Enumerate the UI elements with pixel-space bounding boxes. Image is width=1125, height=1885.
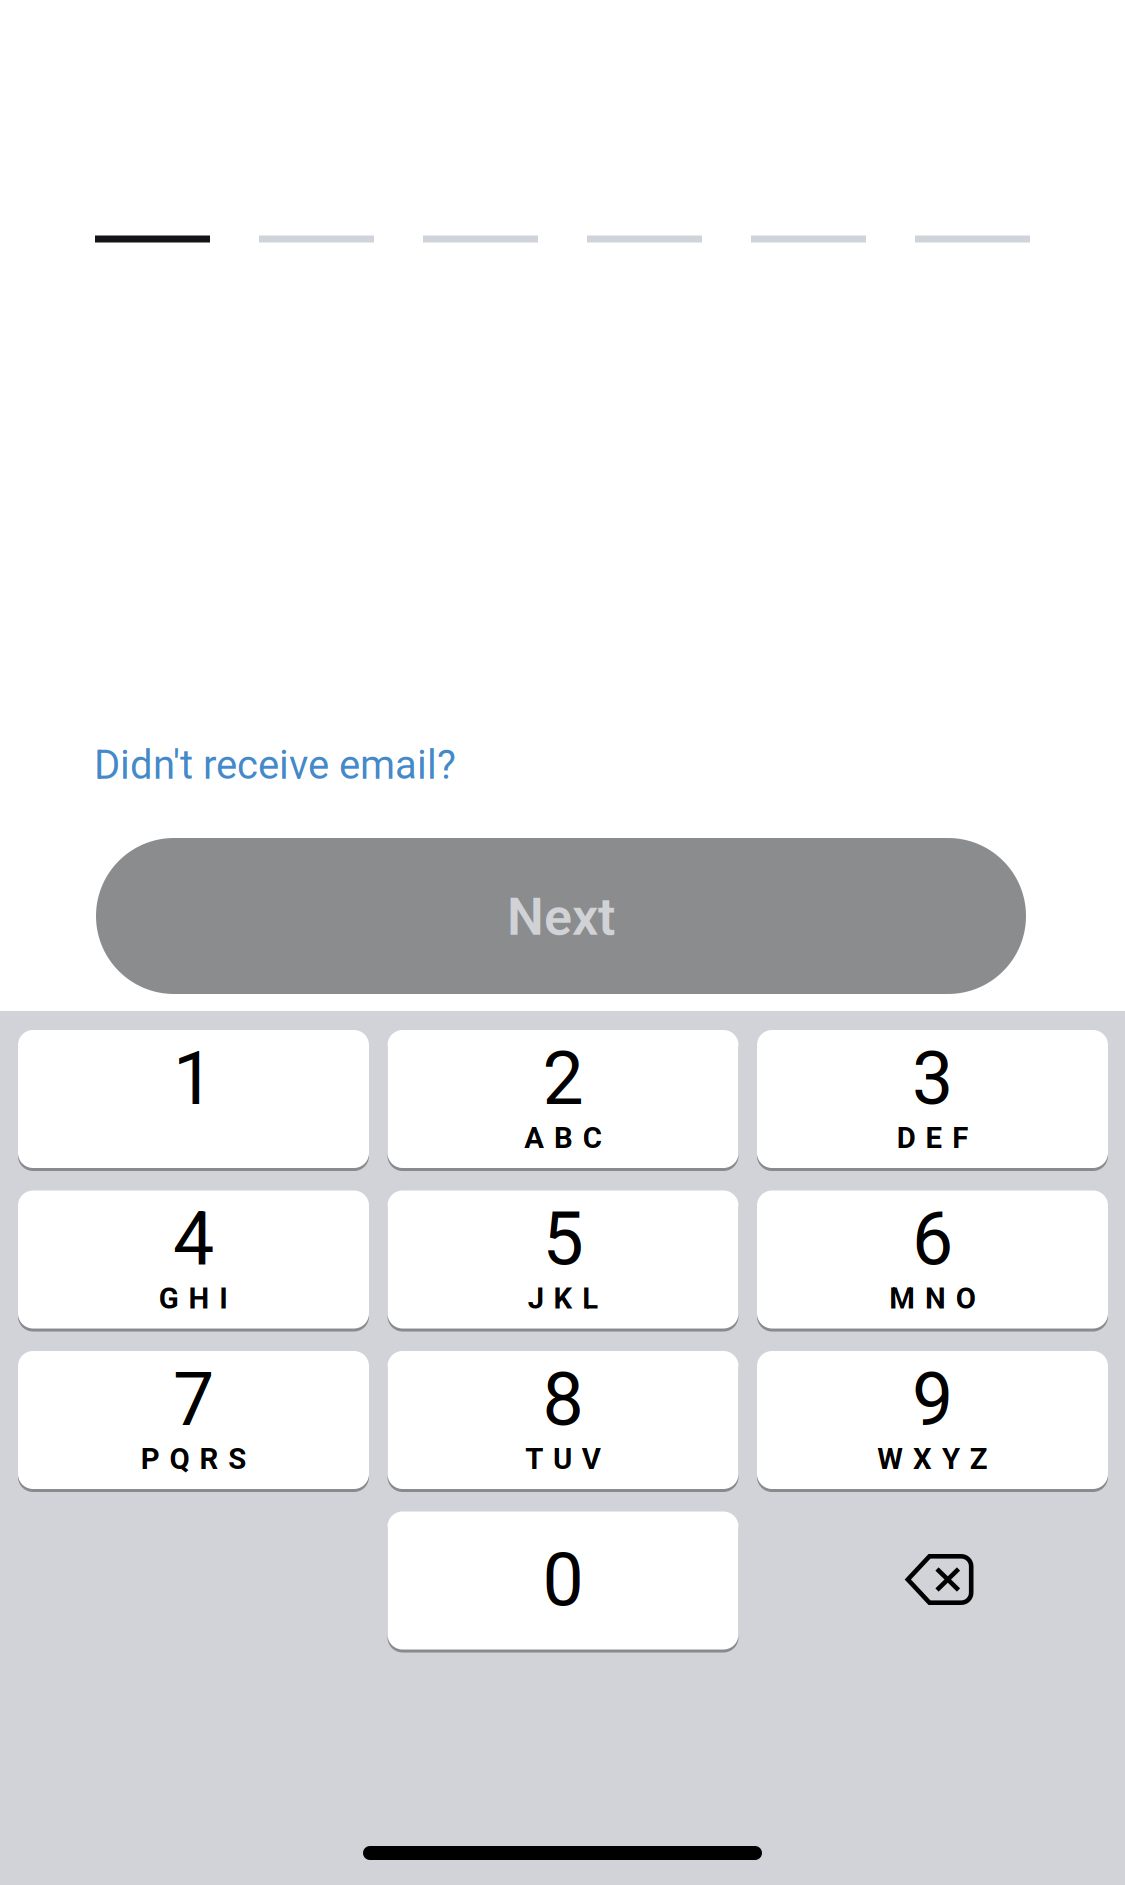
- staticText: 2: [542, 1036, 583, 1122]
- button[interactable]: Delete: [757, 1511, 1108, 1649]
- button[interactable]: 9: [757, 1349, 1108, 1490]
- button[interactable]: 5: [387, 1189, 738, 1330]
- staticText: WXYZ: [877, 1442, 988, 1476]
- staticText: Didn't receive email?: [94, 742, 456, 788]
- staticText: GHI: [159, 1281, 228, 1316]
- button[interactable]: 2: [387, 1028, 738, 1169]
- staticText: 9: [912, 1357, 953, 1443]
- button[interactable]: 8: [387, 1349, 738, 1490]
- button[interactable]: 1: [18, 1028, 369, 1169]
- staticText: 7: [173, 1357, 214, 1443]
- staticText: JKL: [528, 1281, 598, 1316]
- staticText: Next: [507, 886, 615, 947]
- button[interactable]: 0: [387, 1510, 738, 1651]
- button[interactable]: 4: [18, 1189, 369, 1330]
- staticText: 6: [912, 1196, 953, 1282]
- staticText: MNO: [889, 1281, 976, 1316]
- staticText: 1: [173, 1036, 214, 1122]
- staticText: DEF: [897, 1121, 968, 1155]
- button[interactable]: 7: [18, 1349, 369, 1490]
- staticText: TUV: [525, 1442, 601, 1476]
- button[interactable]: Verification code: [96, 146, 1029, 242]
- staticText: ABC: [524, 1121, 602, 1155]
- staticText: 4: [173, 1196, 214, 1282]
- staticText: PQRS: [141, 1442, 246, 1476]
- button[interactable]: 3: [757, 1028, 1108, 1169]
- staticText: 0: [542, 1537, 583, 1623]
- button[interactable]: 6: [757, 1189, 1108, 1330]
- button[interactable]: Next: [96, 838, 1026, 994]
- staticText: 3: [912, 1036, 953, 1122]
- staticText: 8: [542, 1357, 583, 1443]
- button[interactable]: Didn't receive email?: [94, 739, 514, 791]
- staticText: 5: [542, 1196, 583, 1282]
